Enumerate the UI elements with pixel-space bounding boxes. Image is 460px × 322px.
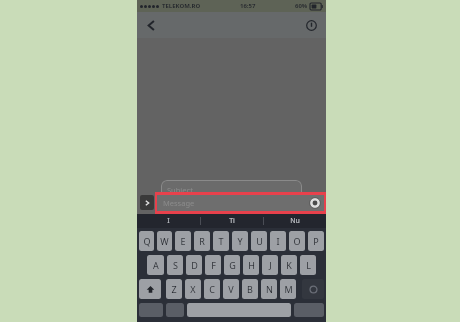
staticText: B bbox=[247, 283, 253, 295]
button[interactable]: Info bbox=[301, 15, 321, 35]
staticText: R bbox=[199, 235, 205, 247]
staticText: S bbox=[173, 259, 178, 271]
staticText: TELEKOM.RO bbox=[162, 2, 201, 10]
button[interactable]: E bbox=[175, 231, 191, 251]
button[interactable]: Return bbox=[294, 303, 324, 317]
button[interactable]: N bbox=[261, 279, 277, 299]
staticText: V bbox=[228, 283, 234, 295]
button[interactable]: Subject bbox=[161, 180, 302, 200]
button[interactable]: P bbox=[308, 231, 324, 251]
staticText: I bbox=[167, 216, 170, 226]
staticText: Message bbox=[163, 198, 195, 208]
button[interactable]: Emoji bbox=[166, 303, 184, 317]
button[interactable]: X bbox=[185, 279, 201, 299]
button[interactable]: Back bbox=[141, 15, 161, 35]
staticText: D bbox=[191, 259, 198, 271]
button[interactable]: Y bbox=[232, 231, 248, 251]
button[interactable]: J bbox=[262, 255, 278, 275]
button[interactable]: H bbox=[243, 255, 259, 275]
staticText: O bbox=[293, 235, 301, 247]
button[interactable]: L bbox=[300, 255, 316, 275]
button[interactable]: I bbox=[137, 214, 200, 228]
button[interactable]: R bbox=[194, 231, 210, 251]
staticText: H bbox=[248, 259, 255, 271]
button[interactable]: K bbox=[281, 255, 297, 275]
staticText: Ti bbox=[229, 216, 235, 226]
staticText: Nu bbox=[290, 216, 300, 226]
staticText: G bbox=[229, 259, 236, 271]
staticText: I bbox=[276, 235, 280, 247]
button[interactable]: U bbox=[251, 231, 267, 251]
staticText: Subject bbox=[167, 185, 193, 195]
button[interactable]: C bbox=[204, 279, 220, 299]
staticText: P bbox=[313, 235, 319, 247]
button[interactable]: Nu bbox=[264, 214, 326, 228]
staticText: Q bbox=[143, 235, 151, 247]
button[interactable]: Message bbox=[155, 192, 326, 214]
button[interactable]: V bbox=[223, 279, 239, 299]
staticText: X bbox=[190, 283, 196, 295]
staticText: W bbox=[160, 235, 169, 247]
staticText: F bbox=[211, 259, 216, 271]
button[interactable]: G bbox=[224, 255, 240, 275]
button[interactable]: O bbox=[289, 231, 305, 251]
button[interactable]: D bbox=[186, 255, 202, 275]
button[interactable]: S bbox=[167, 255, 183, 275]
button[interactable]: B bbox=[242, 279, 258, 299]
button[interactable]: Numbers bbox=[139, 303, 163, 317]
button[interactable]: Ti bbox=[201, 214, 263, 228]
button[interactable]: Space bbox=[187, 303, 291, 317]
staticText: T bbox=[218, 235, 224, 247]
staticText: Y bbox=[237, 235, 243, 247]
staticText: J bbox=[269, 259, 272, 271]
staticText: L bbox=[306, 259, 311, 271]
button[interactable]: Q bbox=[139, 231, 154, 251]
staticText: M bbox=[284, 283, 293, 295]
button[interactable]: A bbox=[147, 255, 164, 275]
staticText: 60% bbox=[295, 2, 308, 10]
button[interactable]: W bbox=[157, 231, 172, 251]
button[interactable]: Attach bbox=[309, 197, 321, 209]
staticText: 16:57 bbox=[240, 2, 256, 10]
staticText: E bbox=[180, 235, 186, 247]
button[interactable]: Backspace bbox=[302, 279, 324, 299]
button[interactable]: Expand bbox=[140, 195, 154, 210]
staticText: K bbox=[286, 259, 292, 271]
button[interactable]: Z bbox=[166, 279, 182, 299]
button[interactable]: Shift bbox=[139, 279, 161, 299]
button[interactable]: I bbox=[270, 231, 286, 251]
button[interactable]: T bbox=[213, 231, 229, 251]
staticText: U bbox=[256, 235, 263, 247]
button[interactable]: F bbox=[205, 255, 221, 275]
staticText: A bbox=[153, 259, 159, 271]
staticText: C bbox=[209, 283, 215, 295]
staticText: Z bbox=[171, 283, 177, 295]
button[interactable]: M bbox=[280, 279, 296, 299]
staticText: N bbox=[266, 283, 273, 295]
